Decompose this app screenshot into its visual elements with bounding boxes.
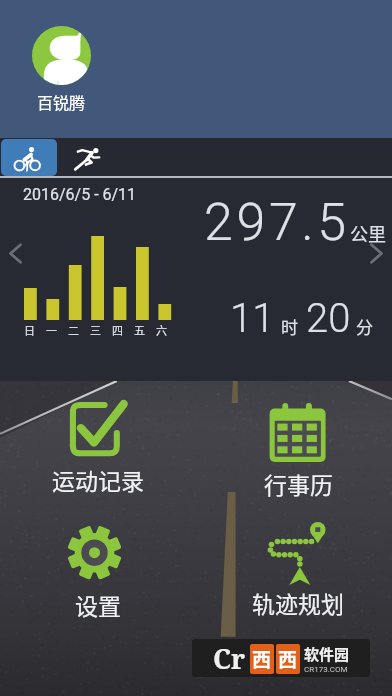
staticText: 百锐腾: [37, 90, 86, 113]
staticText: 日: [24, 322, 35, 338]
staticText: 设置: [75, 588, 121, 621]
staticText: 一: [46, 322, 57, 338]
staticText: 轨迹规划: [252, 586, 344, 619]
staticText: 分: [356, 314, 373, 339]
staticText: 20: [306, 295, 351, 342]
button[interactable]: 轨迹规划: [236, 520, 360, 619]
staticText: 二: [68, 322, 79, 338]
staticText: 行事历: [264, 467, 333, 500]
button[interactable]: Cycling: [1, 139, 57, 176]
button[interactable]: Previous week: [5, 243, 26, 264]
staticText: 六: [156, 322, 167, 338]
staticText: 公里: [350, 220, 386, 246]
staticText: 三: [90, 322, 101, 338]
staticText: 西: [252, 645, 272, 673]
staticText: 运动记录: [52, 463, 144, 496]
staticText: 四: [112, 322, 123, 338]
button[interactable]: 设置: [36, 522, 160, 621]
button[interactable]: Running: [58, 138, 116, 176]
staticText: 时: [281, 314, 298, 339]
staticText: 西: [278, 645, 298, 673]
button[interactable]: 行事历: [236, 401, 360, 500]
button[interactable]: 百锐腾: [32, 26, 91, 113]
button[interactable]: Next week: [366, 243, 387, 264]
staticText: 11: [230, 295, 275, 342]
staticText: Cr: [213, 640, 246, 677]
staticText: 软件园: [304, 643, 350, 665]
staticText: 297.5: [204, 192, 350, 253]
button[interactable]: 运动记录: [36, 397, 160, 496]
staticText: 五: [134, 322, 145, 338]
staticText: 2016/6/5 - 6/11: [23, 185, 137, 204]
staticText: CR173.COM: [304, 665, 348, 674]
